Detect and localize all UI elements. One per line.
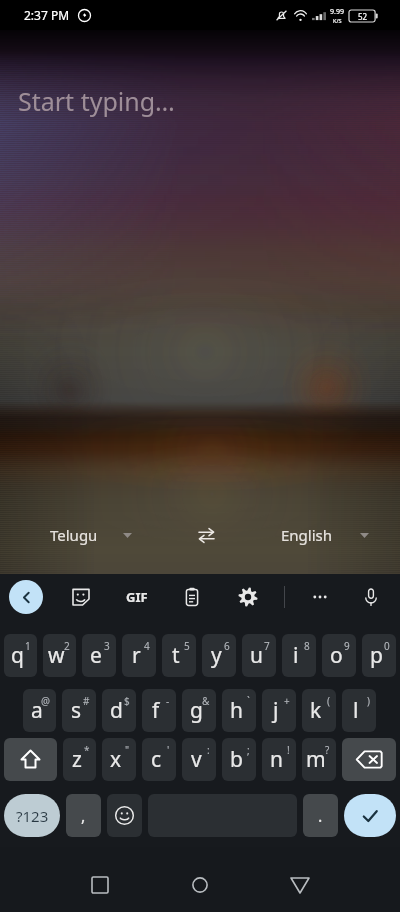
- button[interactable]: GIF: [120, 580, 154, 614]
- button[interactable]: p: [362, 634, 396, 677]
- staticText: k: [310, 696, 322, 725]
- button[interactable]: Enter: [344, 794, 396, 837]
- button[interactable]: Voice input: [354, 580, 388, 614]
- staticText: h: [230, 696, 243, 725]
- staticText: GIF: [126, 588, 148, 606]
- button[interactable]: Swap languages: [191, 520, 221, 550]
- button[interactable]: Clipboard: [175, 580, 209, 614]
- staticText: v: [191, 745, 202, 774]
- staticText: @: [41, 694, 50, 708]
- button[interactable]: x: [102, 738, 136, 781]
- staticText: 4: [144, 639, 150, 653]
- button[interactable]: More options: [303, 580, 337, 614]
- button[interactable]: English: [271, 519, 379, 551]
- staticText: :: [207, 743, 210, 757]
- staticText: 8: [304, 639, 310, 653]
- button[interactable]: Stickers: [64, 580, 98, 614]
- staticText: g: [190, 696, 203, 725]
- button[interactable]: Recent apps: [76, 861, 124, 909]
- staticText: English: [281, 525, 333, 545]
- button[interactable]: z: [63, 738, 96, 781]
- staticText: *: [84, 743, 90, 757]
- button[interactable]: n: [262, 738, 296, 781]
- button[interactable]: u: [242, 634, 276, 677]
- staticText: i: [293, 641, 299, 670]
- button[interactable]: q: [4, 634, 37, 677]
- button[interactable]: Back: [276, 861, 324, 909]
- staticText: 7: [264, 639, 270, 653]
- button[interactable]: l: [342, 689, 376, 732]
- staticText: ): [367, 694, 370, 708]
- staticText: ,: [81, 805, 86, 827]
- staticText: z: [72, 745, 82, 774]
- button[interactable]: o: [322, 634, 356, 677]
- button[interactable]: Shift: [4, 738, 57, 781]
- staticText: t: [172, 641, 180, 670]
- button[interactable]: ?123: [4, 794, 60, 837]
- staticText: c: [151, 745, 162, 774]
- staticText: w: [48, 641, 65, 670]
- staticText: m: [306, 745, 326, 774]
- staticText: d: [110, 696, 123, 725]
- button[interactable]: d: [102, 689, 136, 732]
- staticText: 3: [104, 639, 110, 653]
- button[interactable]: ,: [66, 794, 101, 837]
- button[interactable]: Emoji: [107, 794, 142, 837]
- staticText: y: [211, 641, 222, 670]
- button[interactable]: g: [182, 689, 216, 732]
- button[interactable]: s: [62, 689, 96, 732]
- button[interactable]: w: [43, 634, 76, 677]
- staticText: n: [270, 745, 283, 774]
- button[interactable]: a: [23, 689, 56, 732]
- staticText: 1: [25, 639, 31, 653]
- button[interactable]: y: [202, 634, 236, 677]
- staticText: 5: [184, 639, 190, 653]
- staticText: ?123: [16, 806, 49, 826]
- staticText: e: [90, 641, 102, 670]
- button[interactable]: c: [142, 738, 176, 781]
- staticText: .: [318, 805, 323, 827]
- button[interactable]: k: [302, 689, 336, 732]
- staticText: #: [83, 694, 90, 708]
- button[interactable]: j: [262, 689, 296, 732]
- staticText: s: [71, 696, 82, 725]
- staticText: $: [124, 694, 130, 708]
- button[interactable]: v: [182, 738, 216, 781]
- staticText: 52: [358, 11, 368, 22]
- staticText: b: [230, 745, 243, 774]
- staticText: j: [273, 696, 279, 725]
- staticText: !: [287, 743, 290, 757]
- staticText: f: [152, 696, 160, 725]
- staticText: ?: [325, 743, 330, 757]
- staticText: 9.99: [330, 7, 344, 17]
- staticText: 6: [224, 639, 230, 653]
- button[interactable]: Telugu: [40, 519, 142, 551]
- button[interactable]: i: [282, 634, 316, 677]
- button[interactable]: b: [222, 738, 256, 781]
- staticText: u: [250, 641, 263, 670]
- staticText: 0: [384, 639, 390, 653]
- button[interactable]: Backspace: [342, 738, 396, 781]
- staticText: ': [167, 743, 170, 757]
- staticText: 2:37 PM: [24, 7, 70, 23]
- staticText: q: [11, 641, 24, 670]
- staticText: &: [202, 694, 210, 708]
- staticText: x: [110, 745, 122, 774]
- button[interactable]: f: [142, 689, 176, 732]
- button[interactable]: Home: [176, 861, 224, 909]
- button[interactable]: h: [222, 689, 256, 732]
- button[interactable]: m: [302, 738, 336, 781]
- button[interactable]: Settings: [231, 580, 265, 614]
- staticText: (: [327, 694, 330, 708]
- staticText: a: [31, 696, 43, 725]
- staticText: -: [166, 694, 170, 708]
- button[interactable]: .: [303, 794, 338, 837]
- button[interactable]: t: [162, 634, 196, 677]
- staticText: `: [247, 694, 250, 708]
- staticText: +: [284, 694, 290, 708]
- button[interactable]: r: [122, 634, 156, 677]
- button[interactable]: e: [82, 634, 116, 677]
- button[interactable]: Back: [9, 580, 43, 614]
- staticText: K/S: [333, 17, 342, 24]
